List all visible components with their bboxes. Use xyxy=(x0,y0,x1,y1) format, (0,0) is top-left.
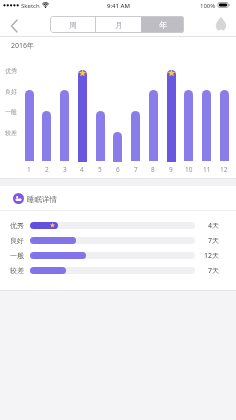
button[interactable]: 年 xyxy=(141,16,184,33)
staticText: 月 xyxy=(115,20,123,30)
staticText: 睡眠详情 xyxy=(27,195,57,204)
staticText: 3 xyxy=(63,165,67,174)
button[interactable]: 较差 xyxy=(0,263,236,278)
staticText: 优秀 xyxy=(5,67,17,75)
button[interactable]: 良好 xyxy=(0,233,236,248)
staticText: 8 xyxy=(151,165,155,174)
button[interactable]: 一般 xyxy=(0,248,236,263)
staticText: 2016年 xyxy=(11,41,35,51)
staticText: 一般 xyxy=(10,251,24,260)
staticText: 9:41 AM xyxy=(107,2,130,10)
staticText: 良好 xyxy=(10,236,24,245)
staticText: 10 xyxy=(185,165,193,174)
staticText: 7天 xyxy=(208,266,220,276)
staticText: 优秀 xyxy=(10,221,24,230)
staticText: 良好 xyxy=(5,88,17,96)
staticText: 一般 xyxy=(5,108,17,116)
staticText: 4 xyxy=(80,165,84,174)
staticText: Sketch xyxy=(21,2,40,10)
button[interactable]: 优秀 xyxy=(0,218,236,233)
staticText: 11 xyxy=(203,165,211,174)
button[interactable]: 月 xyxy=(96,16,141,33)
staticText: 9 xyxy=(169,165,173,174)
staticText: 1 xyxy=(27,165,31,174)
staticText: 5 xyxy=(98,165,102,174)
staticText: 12 xyxy=(220,165,228,174)
staticText: 100% xyxy=(200,2,216,10)
staticText: 12天 xyxy=(204,251,220,261)
staticText: 较差 xyxy=(5,129,17,137)
staticText: 7天 xyxy=(208,236,220,246)
staticText: 周 xyxy=(69,20,77,30)
staticText: 较差 xyxy=(10,266,24,275)
staticText: 6 xyxy=(116,165,120,174)
staticText: 7 xyxy=(134,165,138,174)
staticText: 2 xyxy=(45,165,49,174)
staticText: 年 xyxy=(159,20,167,30)
button[interactable] xyxy=(210,13,232,35)
button[interactable] xyxy=(4,14,26,36)
button[interactable]: 周 xyxy=(50,16,95,33)
staticText: 4天 xyxy=(208,221,220,231)
